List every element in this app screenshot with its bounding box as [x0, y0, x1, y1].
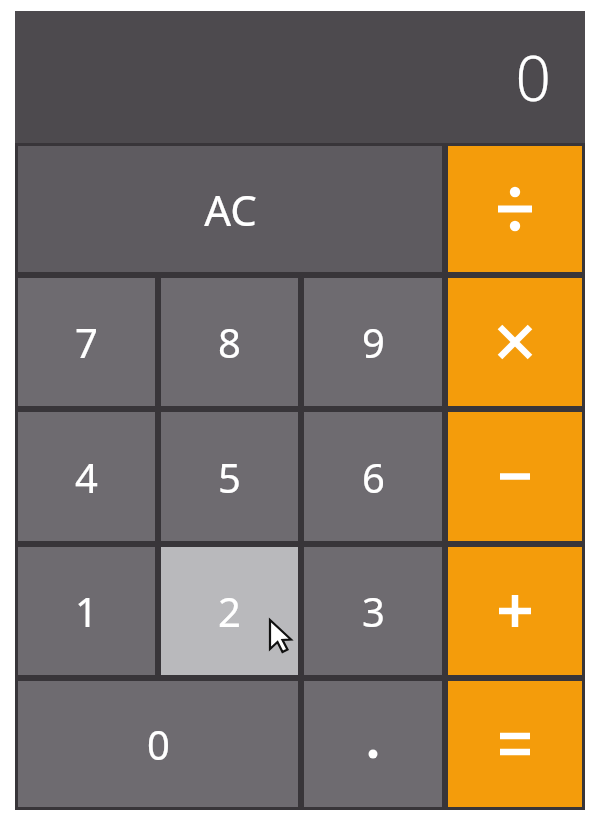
button[interactable]: 5	[161, 412, 298, 541]
staticText: 0	[515, 35, 551, 119]
button[interactable]: 6	[304, 412, 442, 541]
button[interactable]: 4	[18, 412, 155, 541]
button[interactable]: Subtract	[448, 412, 582, 541]
staticText: 2	[218, 584, 241, 638]
button[interactable]: 2	[161, 547, 298, 675]
staticText: 9	[362, 315, 385, 369]
staticText: 0	[147, 717, 170, 771]
button[interactable]: 7	[18, 278, 155, 406]
staticText: 5	[218, 450, 241, 504]
staticText: 3	[362, 584, 385, 638]
button[interactable]: 9	[304, 278, 442, 406]
staticText: 8	[218, 315, 241, 369]
button[interactable]: 3	[304, 547, 442, 675]
button[interactable]: 0	[15, 11, 585, 143]
button[interactable]: 0	[18, 681, 298, 807]
button[interactable]: 8	[161, 278, 298, 406]
staticText: AC	[204, 181, 257, 238]
staticText: 4	[75, 450, 98, 504]
button[interactable]: Add	[448, 547, 582, 675]
button[interactable]: AC	[18, 146, 442, 272]
button[interactable]: Divide	[448, 146, 582, 272]
staticText: 7	[75, 315, 98, 369]
staticText: 1	[75, 584, 98, 638]
button[interactable]: 1	[18, 547, 155, 675]
button[interactable]: Equals	[448, 681, 582, 807]
staticText: 6	[362, 450, 385, 504]
button[interactable]: Multiply	[448, 278, 582, 406]
button[interactable]: Decimal point	[304, 681, 442, 807]
